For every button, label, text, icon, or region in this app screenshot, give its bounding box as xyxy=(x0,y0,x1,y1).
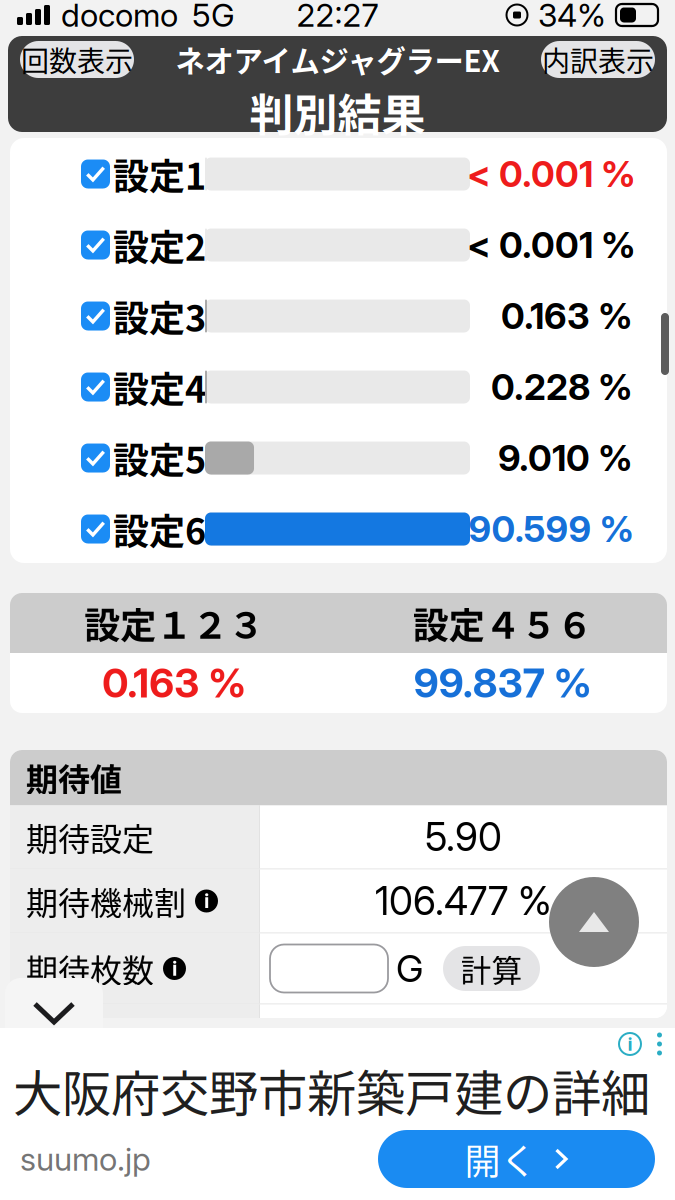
staticText: ネオアイムジャグラーEX xyxy=(175,38,499,80)
staticText: < 0.001 % xyxy=(467,223,636,267)
button[interactable]: 設定4 xyxy=(10,351,667,422)
staticText: 判別結果 xyxy=(249,80,425,144)
staticText: 0.163 % xyxy=(501,294,633,338)
staticText: 設定1 xyxy=(113,148,206,200)
staticText: 計算 xyxy=(460,946,522,991)
staticText: 5G xyxy=(192,0,235,34)
staticText: 開く xyxy=(464,1133,536,1185)
staticText: 設定４５６ xyxy=(413,597,593,649)
staticText: G xyxy=(396,946,423,991)
staticText: docomo xyxy=(61,0,178,34)
staticText: 内訳表示 xyxy=(542,39,654,80)
button[interactable]: 設定5 xyxy=(10,422,667,493)
staticText: i xyxy=(204,889,209,913)
staticText: 9.010 % xyxy=(498,436,633,480)
button[interactable]: 計算 xyxy=(443,946,540,991)
staticText: 0.163 % xyxy=(102,659,246,707)
staticText: 期待設定 xyxy=(26,814,154,860)
button[interactable]: 設定2 xyxy=(10,209,667,280)
button[interactable]: 設定1 xyxy=(10,138,667,209)
staticText: 0.228 % xyxy=(491,365,633,409)
staticText: 期待機械割 xyxy=(26,878,186,924)
staticText: suumo.jp xyxy=(20,1140,151,1178)
button[interactable]: 回数表示 xyxy=(20,41,134,78)
staticText: 設定4 xyxy=(113,361,206,413)
staticText: 106.477 % xyxy=(375,878,552,924)
staticText: < 0.001 % xyxy=(467,152,636,196)
staticText: 設定5 xyxy=(113,432,206,484)
staticText: i xyxy=(172,956,177,981)
staticText: 期待枚数 xyxy=(26,945,154,992)
staticText: 34% xyxy=(538,0,606,34)
button[interactable]: 内訳表示 xyxy=(541,41,655,78)
staticText: 90.599 % xyxy=(468,507,634,551)
staticText: 期待値 xyxy=(26,754,122,801)
staticText: 大阪府交野市新築戸建の詳細 xyxy=(13,1054,650,1126)
button[interactable]: 設定3 xyxy=(10,280,667,351)
staticText: 設定１２３ xyxy=(84,597,264,649)
staticText: 22:27 xyxy=(296,0,378,34)
button[interactable]: 開く xyxy=(378,1130,655,1188)
staticText: 設定6 xyxy=(113,503,206,555)
button[interactable]: Hide keyboard xyxy=(5,978,103,1048)
staticText: i xyxy=(627,1033,632,1055)
staticText: 5.90 xyxy=(425,814,502,860)
button[interactable]: 設定6 xyxy=(10,493,667,564)
staticText: 設定3 xyxy=(113,290,206,342)
staticText: 回数表示 xyxy=(21,39,133,80)
staticText: 99.837 % xyxy=(414,659,592,707)
button[interactable]: Scroll to top xyxy=(549,877,639,967)
staticText: 設定2 xyxy=(113,219,206,271)
